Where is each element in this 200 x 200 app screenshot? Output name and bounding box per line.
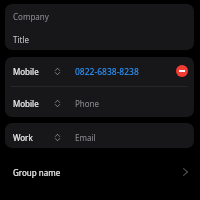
staticText: Phone: [75, 98, 100, 109]
button[interactable]: Remove phone number: [176, 65, 188, 77]
button[interactable]: Work: [5, 125, 194, 148]
staticText: Company: [13, 11, 49, 22]
staticText: Work: [13, 132, 33, 143]
button[interactable]: Title: [5, 29, 194, 50]
button[interactable]: Mobile: [5, 89, 194, 117]
staticText: Mobile: [13, 98, 39, 109]
staticText: Email: [75, 132, 96, 143]
button[interactable]: Mobile: [5, 57, 194, 86]
staticText: Group name: [13, 167, 61, 178]
staticText: 0822-6838-8238: [75, 66, 139, 78]
button[interactable]: Group name: [0, 160, 200, 184]
staticText: Title: [13, 34, 29, 45]
button[interactable]: Company: [5, 4, 194, 29]
staticText: Mobile: [13, 66, 39, 77]
